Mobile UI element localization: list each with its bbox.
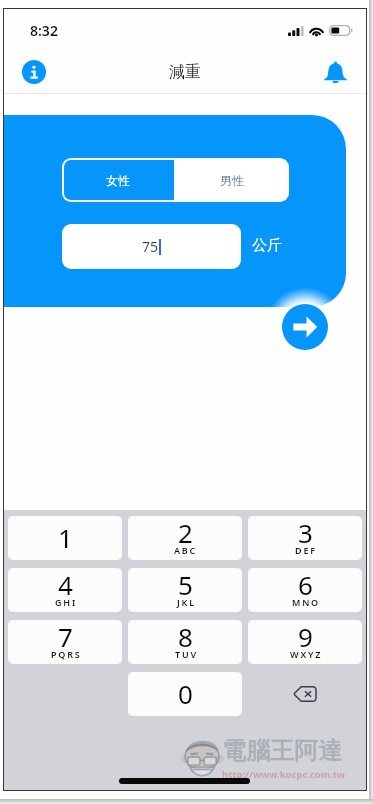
staticText: ABC — [174, 544, 198, 556]
staticText: WXYZ — [290, 648, 323, 660]
staticText: 減重 — [169, 62, 201, 82]
button[interactable]: 0 — [128, 672, 242, 716]
button[interactable]: Next — [282, 304, 328, 350]
staticText: 電腦王阿達 — [222, 736, 342, 766]
staticText: 8 — [178, 620, 193, 654]
staticText: http://www.kocpc.com.tw — [222, 768, 345, 781]
staticText: 男性 — [220, 173, 244, 188]
button[interactable]: 9 — [248, 620, 362, 664]
button[interactable]: Delete — [248, 672, 362, 716]
button[interactable]: 3 — [248, 516, 362, 560]
staticText: 4 — [58, 568, 73, 602]
staticText: 1 — [58, 520, 73, 555]
button[interactable]: Notifications — [317, 54, 353, 90]
staticText: 公斤 — [252, 236, 282, 255]
button[interactable]: 4 — [8, 568, 122, 612]
staticText: DEF — [295, 544, 317, 556]
button[interactable]: 男性 — [174, 158, 289, 202]
staticText: PQRS — [51, 648, 82, 660]
staticText: 9 — [298, 620, 313, 654]
button[interactable]: 7 — [8, 620, 122, 664]
staticText: JKL — [177, 596, 196, 608]
button[interactable]: 6 — [248, 568, 362, 612]
staticText: TUV — [175, 648, 198, 660]
staticText: 6 — [298, 568, 313, 602]
button[interactable]: 1 — [8, 516, 122, 560]
button[interactable]: 女性 — [62, 158, 174, 202]
staticText: MNO — [292, 596, 320, 608]
staticText: GHI — [55, 596, 78, 608]
button[interactable]: 75 — [62, 224, 241, 269]
button[interactable]: 5 — [128, 568, 242, 612]
staticText: 3 — [298, 516, 313, 550]
staticText: 2 — [178, 516, 193, 550]
staticText: 75 — [142, 237, 159, 256]
staticText: 5 — [178, 568, 193, 602]
button[interactable]: 8 — [128, 620, 242, 664]
staticText: 女性 — [106, 173, 130, 188]
staticText: 0 — [178, 676, 193, 711]
button[interactable]: Info — [16, 54, 52, 90]
staticText: 7 — [58, 620, 73, 654]
staticText: 8:32 — [30, 21, 58, 40]
button[interactable]: 2 — [128, 516, 242, 560]
